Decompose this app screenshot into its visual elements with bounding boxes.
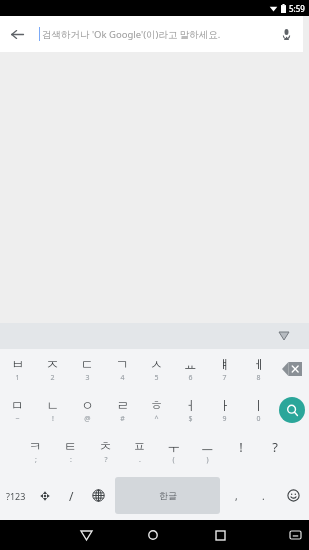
button[interactable]: Back [0,17,34,51]
button[interactable]: ㅎ [139,389,173,431]
staticText: : [70,455,72,465]
staticText: ㄴ [46,397,59,413]
button[interactable]: Search [275,389,309,431]
staticText: / [69,488,74,504]
staticText: 5:59 [289,3,305,14]
button[interactable]: Home [140,522,166,548]
button[interactable]: 한글 [115,477,220,514]
button[interactable]: Hide keyboard [275,327,293,345]
staticText: 1 [15,373,20,383]
staticText: ! [239,438,243,456]
button[interactable]: ㄱ [105,349,139,389]
staticText: ㅎ [150,397,163,413]
button[interactable]: ㅏ [207,389,241,431]
button[interactable]: ㅛ [173,349,207,389]
staticText: ㄷ [81,356,94,372]
button[interactable]: ? [258,431,292,471]
button[interactable]: . [250,471,277,520]
staticText: ㅅ [150,356,163,372]
staticText: ㅛ [184,356,197,372]
staticText: ㅂ [11,356,24,372]
staticText: ㅌ [64,438,77,454]
staticText: 2 [50,373,55,383]
staticText: ~ [15,414,20,424]
staticText: 4 [120,373,125,383]
button[interactable]: ㅣ [241,389,275,431]
staticText: ㅁ [11,397,24,413]
staticText: ?123 [6,490,26,502]
button[interactable]: ㅊ [88,431,122,471]
staticText: ㅒ [218,356,231,372]
staticText: $ [188,414,193,424]
staticText: ㅇ [81,397,94,413]
button[interactable]: Change language [85,471,112,520]
staticText: ! [52,414,54,424]
staticText: ㅍ [133,438,146,454]
staticText: ^ [154,414,159,424]
staticText: ㄱ [116,356,129,372]
button[interactable]: ㄷ [70,349,105,389]
button[interactable]: ㅔ [241,349,275,389]
staticText: ㅜ [167,438,180,454]
staticText: 9 [222,414,227,424]
button[interactable]: ㄴ [35,389,70,431]
staticText: ㅊ [99,438,112,454]
staticText: 7 [222,373,227,383]
staticText: , [235,489,238,503]
staticText: ㅣ [252,397,265,413]
button[interactable]: Backspace [275,349,309,389]
button[interactable]: ㅇ [70,389,105,431]
staticText: ㅈ [46,356,59,372]
staticText: 8 [256,373,261,383]
button[interactable]: ! [224,431,258,471]
button[interactable]: ㅋ [18,431,53,471]
button[interactable]: ㅍ [122,431,156,471]
staticText: @ [84,414,91,424]
staticText: 한글 [159,490,177,501]
button[interactable]: ㅌ [53,431,88,471]
staticText: ) [206,455,209,465]
staticText: ? [272,438,278,456]
button[interactable]: ㅡ [190,431,224,471]
button[interactable]: Hide keyboard [285,525,305,545]
button[interactable]: ㅂ [0,349,35,389]
staticText: ㄹ [116,397,129,413]
staticText: ; [35,455,37,465]
staticText: . [262,489,265,503]
staticText: ㅓ [184,397,197,413]
staticText: 0 [256,414,261,424]
button[interactable]: ㅁ [0,389,35,431]
button[interactable]: ㅈ [35,349,70,389]
button[interactable]: ?123 [0,471,32,520]
button[interactable]: ㄹ [105,389,139,431]
button[interactable]: Move cursor [32,471,58,520]
staticText: 5 [154,373,159,383]
staticText: ? [104,455,108,465]
button[interactable]: Voice search [269,17,303,51]
button[interactable]: Recent apps [207,522,233,548]
button[interactable]: ㅒ [207,349,241,389]
button[interactable]: Emoji [277,471,309,520]
staticText: 6 [188,373,193,383]
staticText: ㅡ [201,438,214,454]
staticText: 3 [85,373,90,383]
button[interactable]: ㅜ [156,431,190,471]
staticText: ㅋ [29,438,42,454]
button[interactable]: ㅓ [173,389,207,431]
staticText: ( [172,455,175,465]
staticText: . [139,455,141,465]
staticText: # [120,414,125,424]
staticText: ㅔ [252,356,265,372]
button[interactable]: Back [73,522,99,548]
staticText: ㅏ [218,397,231,413]
staticText: 검색하거나 'Ok Google'(이)라고 말하세요. [42,28,221,41]
button[interactable]: ㅅ [139,349,173,389]
button[interactable]: , [223,471,250,520]
button[interactable]: / [58,471,85,520]
